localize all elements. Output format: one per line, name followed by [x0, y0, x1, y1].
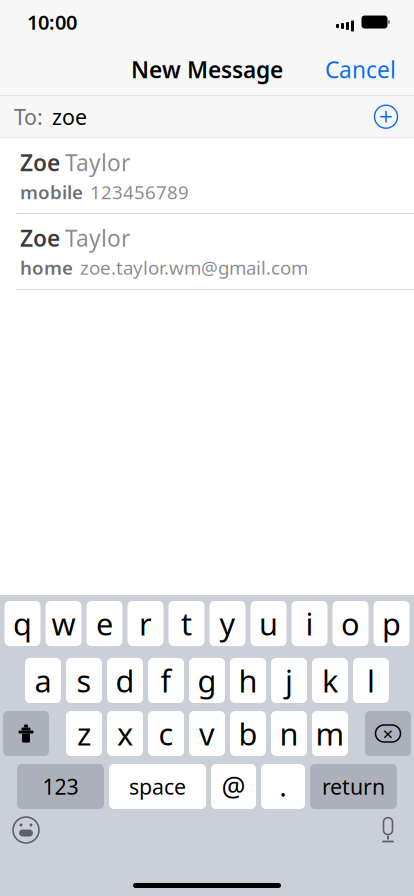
button[interactable]: t — [168, 601, 204, 646]
button[interactable]: p — [373, 601, 409, 646]
staticText: o — [341, 603, 360, 644]
staticText: × — [382, 721, 393, 746]
staticText: home — [20, 255, 73, 280]
staticText: New Message — [131, 54, 283, 84]
staticText: Cancel — [325, 54, 396, 84]
button[interactable]: z — [66, 711, 102, 756]
button[interactable]: m — [312, 711, 348, 756]
button[interactable]: Zoe — [0, 138, 414, 214]
staticText: u — [259, 603, 278, 644]
button[interactable]: w — [45, 601, 81, 646]
staticText: c — [158, 713, 173, 754]
staticText: l — [367, 660, 375, 701]
button[interactable]: n — [271, 711, 307, 756]
button[interactable]: o — [332, 601, 368, 646]
button[interactable]: Shift — [3, 711, 49, 756]
button[interactable]: l — [353, 658, 389, 703]
staticText: f — [160, 660, 171, 701]
button[interactable]: Dictation — [371, 813, 405, 847]
button[interactable]: c — [148, 711, 184, 756]
button[interactable]: b — [230, 711, 266, 756]
button[interactable]: Emoji keyboard — [9, 813, 43, 847]
staticText: mobile — [20, 179, 83, 204]
staticText: zoe — [52, 102, 87, 131]
button[interactable]: g — [189, 658, 225, 703]
staticText: y — [219, 603, 235, 644]
button[interactable]: s — [66, 658, 102, 703]
staticText: s — [76, 660, 91, 701]
staticText: e — [96, 603, 113, 644]
staticText: space — [129, 772, 186, 801]
button[interactable]: . — [261, 764, 305, 809]
button[interactable]: k — [312, 658, 348, 703]
staticText: Taylor — [65, 147, 130, 177]
staticText: t — [181, 603, 192, 644]
button[interactable]: h — [230, 658, 266, 703]
staticText: h — [238, 660, 257, 701]
staticText: m — [315, 713, 344, 754]
button[interactable]: v — [189, 711, 225, 756]
staticText: r — [139, 603, 152, 644]
staticText: Zoe — [20, 223, 60, 253]
staticText: To: — [14, 102, 43, 131]
button[interactable]: y — [209, 601, 245, 646]
button[interactable]: Cancel — [311, 44, 414, 94]
staticText: v — [199, 713, 215, 754]
staticText: b — [238, 713, 257, 754]
button[interactable]: e — [86, 601, 122, 646]
staticText: zoe.taylor.wm@gmail.com — [80, 255, 308, 280]
button[interactable]: a — [25, 658, 61, 703]
staticText: 10:00 — [27, 9, 77, 35]
button[interactable]: Delete — [365, 711, 411, 756]
button[interactable]: x — [107, 711, 143, 756]
staticText: @ — [221, 769, 245, 804]
button[interactable]: space — [109, 764, 206, 809]
staticText: p — [382, 603, 401, 644]
staticText: g — [197, 660, 216, 701]
staticText: z — [77, 713, 91, 754]
staticText: return — [322, 772, 385, 801]
staticText: 123456789 — [90, 179, 189, 204]
button[interactable]: 123 — [17, 764, 104, 809]
staticText: . — [279, 769, 286, 804]
staticText: d — [115, 660, 134, 701]
button[interactable]: r — [127, 601, 163, 646]
button[interactable]: q — [4, 601, 40, 646]
button[interactable]: f — [148, 658, 184, 703]
staticText: q — [13, 603, 32, 644]
staticText: w — [51, 603, 75, 644]
staticText: 123 — [42, 772, 78, 801]
button[interactable]: @ — [211, 764, 256, 809]
staticText: Taylor — [65, 223, 130, 253]
staticText: x — [117, 713, 133, 754]
staticText: j — [285, 660, 293, 701]
button[interactable]: Zoe — [0, 214, 414, 290]
staticText: i — [305, 603, 313, 644]
button[interactable]: j — [271, 658, 307, 703]
staticText: Zoe — [20, 147, 60, 177]
staticText: k — [322, 660, 338, 701]
button[interactable]: u — [250, 601, 286, 646]
button[interactable]: i — [291, 601, 327, 646]
staticText: n — [279, 713, 298, 754]
button[interactable]: return — [310, 764, 397, 809]
staticText: a — [34, 660, 51, 701]
button[interactable]: d — [107, 658, 143, 703]
button[interactable]: Add contact — [366, 97, 406, 137]
